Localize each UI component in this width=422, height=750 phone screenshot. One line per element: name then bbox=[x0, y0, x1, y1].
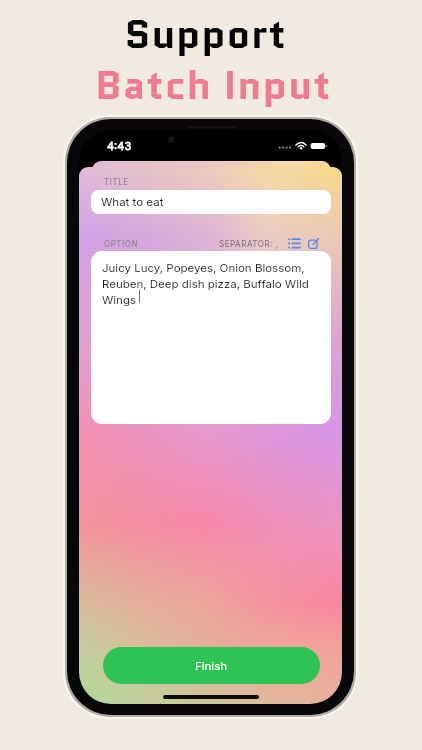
staticText: TITLE bbox=[104, 177, 129, 187]
staticText: SEPARATOR: , bbox=[219, 239, 279, 249]
staticText: Juicy Lucy, Popeyes, Onion Blossom, Reub… bbox=[102, 261, 320, 307]
button[interactable]: Juicy Lucy, Popeyes, Onion Blossom, Reub… bbox=[91, 251, 331, 424]
button[interactable]: What to eat bbox=[91, 190, 331, 214]
staticText: OPTION bbox=[104, 239, 138, 249]
button[interactable]: Finish bbox=[103, 647, 320, 684]
button[interactable]: Edit text bbox=[308, 238, 319, 249]
staticText: 4:43 bbox=[107, 139, 132, 152]
staticText: Batch Input bbox=[95, 56, 332, 113]
staticText: What to eat bbox=[101, 195, 164, 209]
button[interactable]: List view bbox=[288, 238, 300, 249]
staticText: Finish bbox=[195, 659, 228, 673]
staticText: Support bbox=[124, 5, 287, 62]
